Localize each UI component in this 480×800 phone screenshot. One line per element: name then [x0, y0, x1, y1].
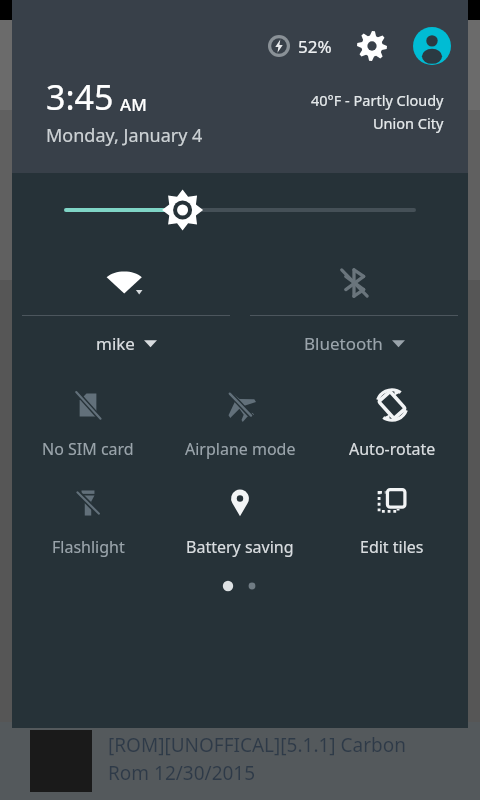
button[interactable]: Edit tiles: [316, 484, 468, 558]
button[interactable]: Brightness: [12, 173, 468, 247]
staticText: [ROM][UNOFFICAL][5.1.1] Carbon: [108, 732, 406, 758]
button[interactable]: Bluetooth: [240, 247, 468, 372]
staticText: 40°F - Partly Cloudy: [311, 90, 444, 110]
staticText: Union City: [373, 113, 444, 133]
staticText: Monday, January 4: [46, 123, 203, 148]
staticText: mike: [96, 332, 135, 355]
button[interactable]: No SIM card: [12, 386, 164, 460]
button[interactable]: Flashlight: [12, 484, 164, 558]
staticText: Bluetooth: [304, 332, 383, 355]
button[interactable]: Settings: [354, 28, 390, 64]
staticText: Rom 12/30/2015: [108, 760, 256, 786]
staticText: 52%: [298, 35, 332, 58]
staticText: Auto-rotate: [349, 438, 436, 460]
staticText: Edit tiles: [360, 536, 424, 558]
staticText: 3:45: [46, 74, 114, 120]
button[interactable]: Auto-rotate: [316, 386, 468, 460]
button[interactable]: User profile: [412, 26, 452, 66]
staticText: AM: [120, 93, 147, 116]
button[interactable]: Battery saving: [164, 484, 316, 558]
button[interactable]: Airplane mode: [164, 386, 316, 460]
button[interactable]: mike: [12, 247, 240, 372]
staticText: No SIM card: [42, 438, 134, 460]
other: Battery charging: [268, 35, 290, 57]
staticText: Battery saving: [186, 536, 294, 558]
staticText: Airplane mode: [185, 438, 296, 460]
staticText: Flashlight: [52, 536, 125, 558]
